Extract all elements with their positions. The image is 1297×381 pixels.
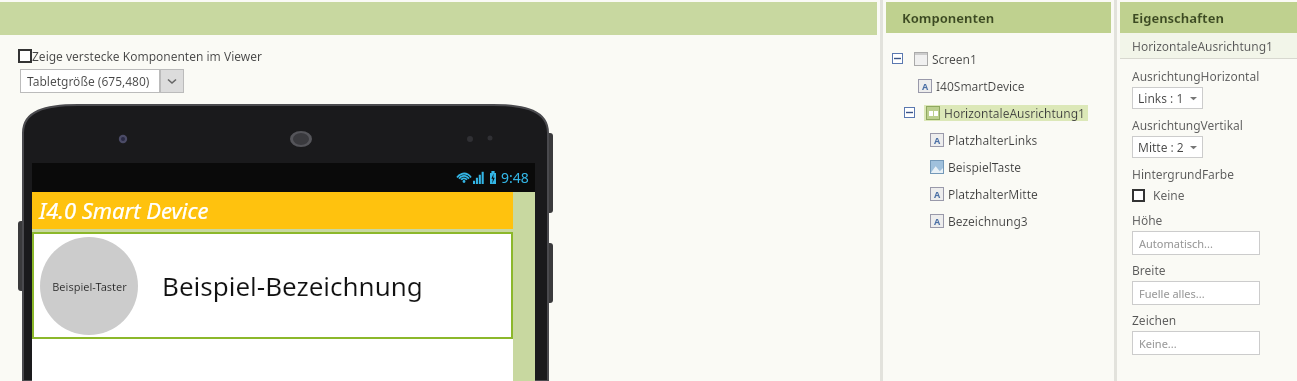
staticText: HintergrundFarbe [1132,166,1234,182]
button[interactable]: A [886,126,1111,153]
button[interactable]: Keine [1132,185,1185,205]
staticText: BeispielTaste [948,159,1022,175]
staticText: Automatisch... [1139,236,1213,251]
button[interactable]: Mitte : 2 [1132,136,1203,158]
other: Größe auswählen [160,69,184,93]
staticText: Breite [1132,262,1166,278]
staticText: Fuelle alles... [1139,286,1205,301]
staticText: Bezeichnung3 [948,213,1028,229]
button[interactable]: Keine... [1132,331,1260,355]
staticText: Zeige verstecke Komponenten im Viewer [32,48,262,64]
staticText: I40SmartDevice [936,78,1025,94]
staticText: Höhe [1132,212,1163,228]
staticText: Beispiel-Taster [52,279,127,294]
staticText: AusrichtungVertikal [1132,117,1243,133]
staticText: HorizontaleAusrichtung1 [1132,38,1273,54]
button[interactable]: Beispiel-Taster [32,232,513,339]
staticText: A [934,215,941,227]
staticText: Links : 1 [1138,90,1184,106]
button[interactable]: A [886,207,1111,234]
staticText: PlatzhalterLinks [948,132,1038,148]
staticText: Screen1 [932,51,977,67]
staticText: Tabletgröße (675,480) [27,73,150,89]
staticText: Mitte : 2 [1138,139,1184,155]
button[interactable]: BeispielTaste [886,153,1111,180]
button[interactable]: Zeige verstecke Komponenten im Viewer [18,48,262,64]
staticText: I4.0 Smart Device [39,195,209,225]
button[interactable]: Tabletgröße (675,480) [20,69,184,93]
staticText: A [934,134,941,146]
staticText: Keine [1153,187,1185,203]
staticText: Beispiel-Bezeichnung [162,268,423,303]
staticText: A [922,80,929,92]
staticText: Zeichen [1132,312,1177,328]
button[interactable]: Zuklappen [892,53,903,64]
button[interactable]: Zuklappen [904,107,915,118]
button[interactable]: Beispiel-Taster [40,237,138,335]
button[interactable]: A [886,72,1111,99]
staticText: HorizontaleAusrichtung1 [944,105,1085,121]
staticText: PlatzhalterMitte [948,186,1038,202]
button[interactable]: Automatisch... [1132,231,1260,255]
staticText: A [934,188,941,200]
staticText: AusrichtungHorizontal [1132,68,1260,84]
button[interactable]: Zuklappen [886,45,1111,72]
staticText: 9:48 [501,168,529,187]
button[interactable]: Zuklappen [886,99,1111,126]
button[interactable]: Links : 1 [1132,87,1203,109]
staticText: Eigenschaften [1132,9,1224,27]
staticText: Komponenten [902,9,995,27]
staticText: Keine... [1139,336,1177,351]
button[interactable]: A [886,180,1111,207]
button[interactable]: Fuelle alles... [1132,281,1260,305]
